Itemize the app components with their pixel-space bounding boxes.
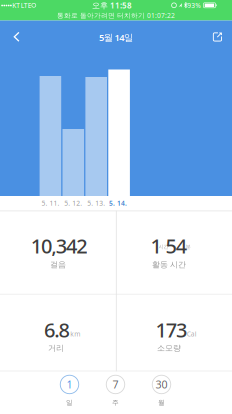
staticText: 일 — [66, 398, 73, 407]
staticText: 5. 13. — [87, 199, 105, 208]
staticText: 6.8 — [44, 316, 70, 343]
staticText: Cal — [187, 329, 197, 338]
staticText: km — [70, 329, 80, 338]
staticText: 걸음 — [50, 260, 66, 270]
staticText: KT — [12, 1, 20, 10]
button[interactable]: 1 — [60, 375, 79, 407]
staticText: 1 — [66, 377, 72, 392]
staticText: 30 — [155, 377, 167, 392]
staticText: 오후 11:58 — [92, 0, 132, 11]
button[interactable]: Back — [4, 25, 28, 49]
button[interactable]: Share — [207, 27, 227, 47]
staticText: 54 — [166, 232, 187, 259]
staticText: 주 — [112, 398, 119, 407]
staticText: 5. 14. — [109, 199, 127, 208]
button[interactable]: 7 — [106, 375, 125, 407]
staticText: 7 — [112, 377, 118, 392]
staticText: 월 — [158, 398, 165, 407]
staticText: 173 — [155, 316, 187, 343]
staticText: 통화로 돌아가려면 터치하기 01:07:22 — [57, 11, 175, 20]
staticText: 93% — [187, 1, 201, 10]
staticText: 1 — [150, 232, 161, 259]
staticText: 소모량 — [157, 343, 181, 353]
staticText: 시간 — [159, 243, 169, 250]
staticText: 거리 — [48, 343, 64, 353]
staticText: 5. 12. — [64, 199, 82, 208]
staticText: 활동 시간 — [152, 260, 186, 270]
button[interactable]: 30 — [152, 375, 171, 407]
staticText: 분 — [185, 243, 190, 250]
staticText: 5월 14일 — [99, 31, 133, 43]
staticText: 10,342 — [31, 232, 87, 259]
staticText: LTE — [21, 1, 32, 10]
staticText: 5. 11. — [41, 199, 59, 208]
